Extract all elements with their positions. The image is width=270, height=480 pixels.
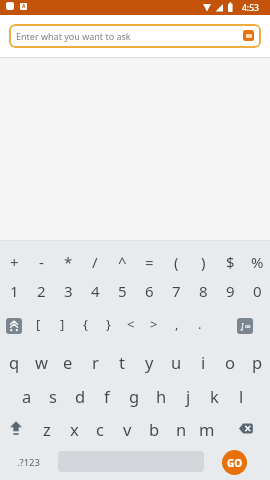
button[interactable]: . [187, 310, 213, 338]
staticText: p [252, 351, 263, 373]
button[interactable] [6, 318, 22, 334]
button[interactable]: o [217, 348, 243, 376]
button[interactable]: ] [49, 310, 75, 338]
button[interactable] [243, 30, 254, 41]
button[interactable]: v [114, 415, 140, 443]
button[interactable]: [ [25, 310, 51, 338]
button[interactable]: $ [217, 248, 243, 276]
button[interactable]: 3 [55, 277, 81, 305]
staticText: 4 [91, 281, 100, 301]
button[interactable]: ∫∞ [237, 318, 253, 334]
staticText: = [145, 252, 154, 272]
staticText: s [49, 385, 57, 407]
button[interactable]: e [55, 348, 81, 376]
staticText: 6 [145, 281, 154, 301]
button[interactable]: h [148, 382, 174, 410]
staticText: 9 [226, 281, 235, 301]
staticText: w [35, 351, 48, 373]
staticText: { [83, 315, 88, 333]
button[interactable]: + [1, 248, 27, 276]
button[interactable]: d [67, 382, 93, 410]
button[interactable]: * [55, 248, 81, 276]
button[interactable]: > [141, 310, 167, 338]
button[interactable]: 4 [82, 277, 108, 305]
button[interactable]: t [109, 348, 135, 376]
staticText: g [129, 385, 140, 407]
staticText: y [145, 351, 154, 373]
staticText: ) [201, 252, 206, 272]
staticText: A [22, 3, 26, 10]
button[interactable]: l [228, 382, 254, 410]
staticText: 8 [199, 281, 208, 301]
staticText: 4:53 [242, 2, 259, 14]
button[interactable]: z [34, 415, 60, 443]
button[interactable]: j [175, 382, 201, 410]
staticText: + [10, 252, 19, 272]
button[interactable]: n [168, 415, 194, 443]
button[interactable]: { [72, 310, 98, 338]
staticText: n [176, 418, 187, 440]
button[interactable]: g [121, 382, 147, 410]
staticText: o [225, 351, 235, 373]
staticText: h [156, 385, 167, 407]
staticText: v [123, 418, 132, 440]
button[interactable]: p [244, 348, 270, 376]
button[interactable]: 2 [28, 277, 54, 305]
button[interactable]: 9 [217, 277, 243, 305]
button[interactable]: s [40, 382, 66, 410]
button[interactable]: q [1, 348, 27, 376]
staticText: ^ [118, 252, 127, 272]
button[interactable]: 5 [109, 277, 135, 305]
button[interactable]: r [82, 348, 108, 376]
staticText: t [119, 351, 125, 373]
button[interactable]: f [94, 382, 120, 410]
staticText: q [9, 351, 20, 373]
staticText: GO [227, 456, 243, 470]
button[interactable]: , [164, 310, 190, 338]
staticText: k [210, 385, 219, 407]
button[interactable] [8, 420, 25, 437]
button[interactable]: - [28, 248, 54, 276]
staticText: . [198, 315, 202, 333]
staticText: f [104, 385, 110, 407]
button[interactable]: i [190, 348, 216, 376]
button[interactable]: = [136, 248, 162, 276]
button[interactable] [238, 422, 254, 436]
button[interactable]: 1 [1, 277, 27, 305]
staticText: u [171, 351, 182, 373]
staticText: 0 [253, 281, 262, 301]
button[interactable]: ) [190, 248, 216, 276]
button[interactable]: 7 [163, 277, 189, 305]
button[interactable]: w [28, 348, 54, 376]
staticText: Enter what you want to ask [16, 30, 131, 42]
button[interactable]: 0 [244, 277, 270, 305]
button[interactable]: < [118, 310, 144, 338]
button[interactable]: % [244, 248, 270, 276]
staticText: r [92, 351, 99, 373]
button[interactable]: GO [222, 450, 247, 475]
staticText: % [251, 252, 264, 272]
button[interactable]: Enter what you want to ask [9, 24, 261, 48]
button[interactable]: / [82, 248, 108, 276]
button[interactable]: a [14, 382, 40, 410]
staticText: a [22, 385, 32, 407]
button[interactable]: x [61, 415, 87, 443]
staticText: d [75, 385, 86, 407]
staticText: x [70, 418, 79, 440]
button[interactable]: 6 [136, 277, 162, 305]
button[interactable]: 8 [190, 277, 216, 305]
button[interactable]: } [95, 310, 121, 338]
staticText: 3 [64, 281, 73, 301]
button[interactable]: ( [163, 248, 189, 276]
button[interactable]: m [194, 415, 220, 443]
button[interactable]: u [163, 348, 189, 376]
button[interactable]: .?123 [10, 450, 46, 474]
staticText: 7 [172, 281, 181, 301]
button[interactable]: c [87, 415, 113, 443]
button[interactable]: k [201, 382, 227, 410]
staticText: / [92, 252, 98, 272]
button[interactable]: ^ [109, 248, 135, 276]
button[interactable]: b [141, 415, 167, 443]
button[interactable]: y [136, 348, 162, 376]
